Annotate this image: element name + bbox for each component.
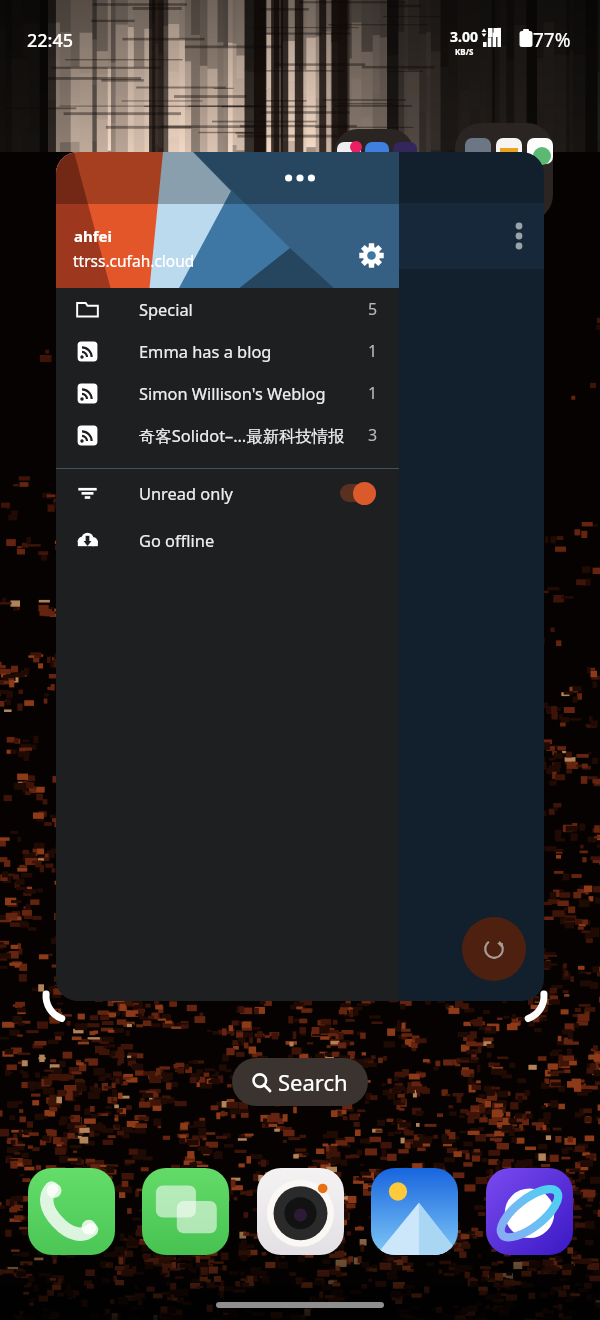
button[interactable]: Camera xyxy=(257,1168,344,1255)
staticText: 5 xyxy=(368,298,378,320)
staticText: ttrss.cufah.cloud xyxy=(73,250,195,271)
staticText: Unread only xyxy=(139,482,233,504)
staticText: 1 xyxy=(368,382,378,404)
staticText: 1 xyxy=(368,340,378,362)
staticText: 77% xyxy=(533,27,571,53)
staticText: KB/S xyxy=(455,46,474,57)
staticText: Search xyxy=(278,1067,348,1097)
button[interactable]: Unread only xyxy=(56,469,399,516)
button[interactable]: Emma has a blog xyxy=(56,330,399,372)
button[interactable]: Simon Willison's Weblog xyxy=(56,372,399,414)
button[interactable]: Search xyxy=(232,1058,368,1106)
button[interactable]: Go offline xyxy=(56,516,399,563)
staticText: ahfei xyxy=(74,226,112,246)
button[interactable]: Phone xyxy=(28,1168,115,1255)
staticText: 22:45 xyxy=(27,28,74,53)
button[interactable]: Browser xyxy=(486,1168,573,1255)
button[interactable]: Refresh xyxy=(462,917,526,981)
staticText: Go offline xyxy=(139,529,215,551)
button[interactable]: More options xyxy=(495,212,543,260)
staticText: Simon Willison's Weblog xyxy=(139,382,326,404)
staticText: 奇客Solidot–…最新科技情报 xyxy=(139,424,345,446)
button[interactable]: Messages xyxy=(142,1168,229,1255)
staticText: Special xyxy=(139,298,193,320)
button[interactable]: Photos xyxy=(371,1168,458,1255)
staticText: Emma has a blog xyxy=(139,340,272,362)
staticText: 3 xyxy=(368,424,378,446)
staticText: 3.00 xyxy=(450,27,478,46)
button[interactable]: More xyxy=(276,154,324,202)
button[interactable]: 奇客Solidot–…最新科技情报 xyxy=(56,414,399,456)
button[interactable]: Settings xyxy=(347,231,395,279)
button[interactable]: Special xyxy=(56,288,399,330)
